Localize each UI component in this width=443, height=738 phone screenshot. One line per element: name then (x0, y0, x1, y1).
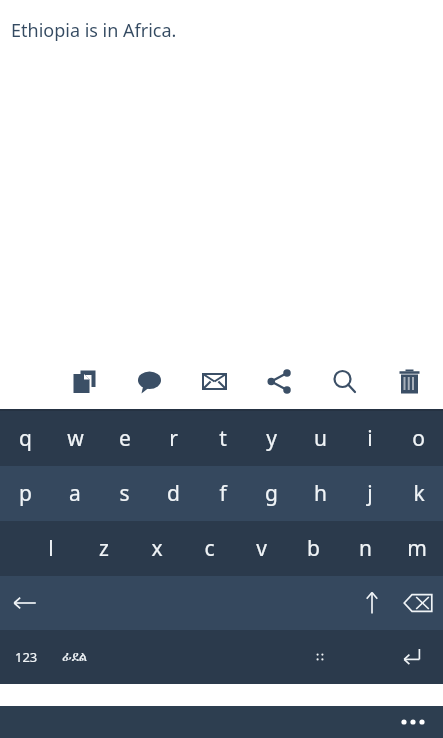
button[interactable]: d (149, 466, 198, 521)
staticText: b (307, 534, 320, 563)
button[interactable]: 123 (4, 635, 48, 679)
button[interactable]: k (394, 466, 443, 521)
button[interactable]: Back (2, 580, 48, 626)
staticText: p (19, 479, 32, 508)
staticText: r (169, 424, 178, 453)
button[interactable]: ፊደል (50, 635, 98, 679)
button[interactable]: f (198, 466, 247, 521)
button[interactable]: More options (397, 706, 429, 738)
button[interactable]: Backspace (395, 580, 441, 626)
button[interactable]: r (149, 411, 198, 466)
staticText: l (48, 534, 54, 563)
button[interactable]: c (183, 521, 235, 576)
staticText: e (119, 424, 131, 453)
staticText: a (69, 479, 81, 508)
button[interactable]: Message (127, 359, 171, 403)
button[interactable]: b (287, 521, 339, 576)
button[interactable]: Share (257, 359, 301, 403)
button[interactable]: a (50, 466, 100, 521)
button[interactable]: j (345, 466, 394, 521)
staticText: q (19, 424, 32, 453)
button[interactable]: h (296, 466, 345, 521)
staticText: f (219, 479, 227, 508)
staticText: t (219, 424, 227, 453)
staticText: m (407, 534, 427, 563)
staticText: ፊደል (62, 651, 87, 664)
staticText: j (367, 479, 373, 508)
button[interactable]: t (198, 411, 247, 466)
staticText: i (367, 424, 373, 453)
staticText: c (204, 534, 215, 563)
staticText: 123 (15, 648, 38, 666)
button[interactable]: u (296, 411, 345, 466)
button[interactable]: w (50, 411, 100, 466)
button[interactable]: s (100, 466, 149, 521)
button[interactable]: q (0, 411, 50, 466)
button[interactable]: l (24, 521, 77, 576)
staticText: n (359, 534, 372, 563)
button[interactable]: Copy (62, 359, 106, 403)
button[interactable]: y (247, 411, 296, 466)
button[interactable]: o (394, 411, 443, 466)
button[interactable]: p (0, 466, 50, 521)
button[interactable]: i (345, 411, 394, 466)
button[interactable]: e (100, 411, 149, 466)
staticText: w (67, 424, 84, 453)
staticText: x (151, 534, 163, 563)
button[interactable]: Shift (349, 580, 395, 626)
staticText: v (256, 534, 267, 563)
staticText: o (412, 424, 425, 453)
button[interactable]: m (391, 521, 443, 576)
button[interactable]: Search (322, 359, 366, 403)
button[interactable]: Enter (389, 635, 433, 679)
staticText: z (99, 534, 109, 563)
button[interactable]: n (339, 521, 391, 576)
staticText: Ethiopia is in Africa. (11, 18, 177, 43)
button[interactable]: g (247, 466, 296, 521)
staticText: u (314, 424, 327, 453)
button[interactable]: Email (192, 359, 236, 403)
button[interactable]: x (130, 521, 183, 576)
button[interactable]: z (77, 521, 130, 576)
button[interactable]: Delete (387, 359, 431, 403)
staticText: y (266, 424, 277, 453)
staticText: k (413, 479, 425, 508)
button[interactable]: v (235, 521, 287, 576)
staticText: g (265, 479, 278, 508)
staticText: h (314, 479, 327, 508)
staticText: d (167, 479, 180, 508)
staticText: s (119, 479, 130, 508)
button[interactable]: Settings (298, 635, 342, 679)
